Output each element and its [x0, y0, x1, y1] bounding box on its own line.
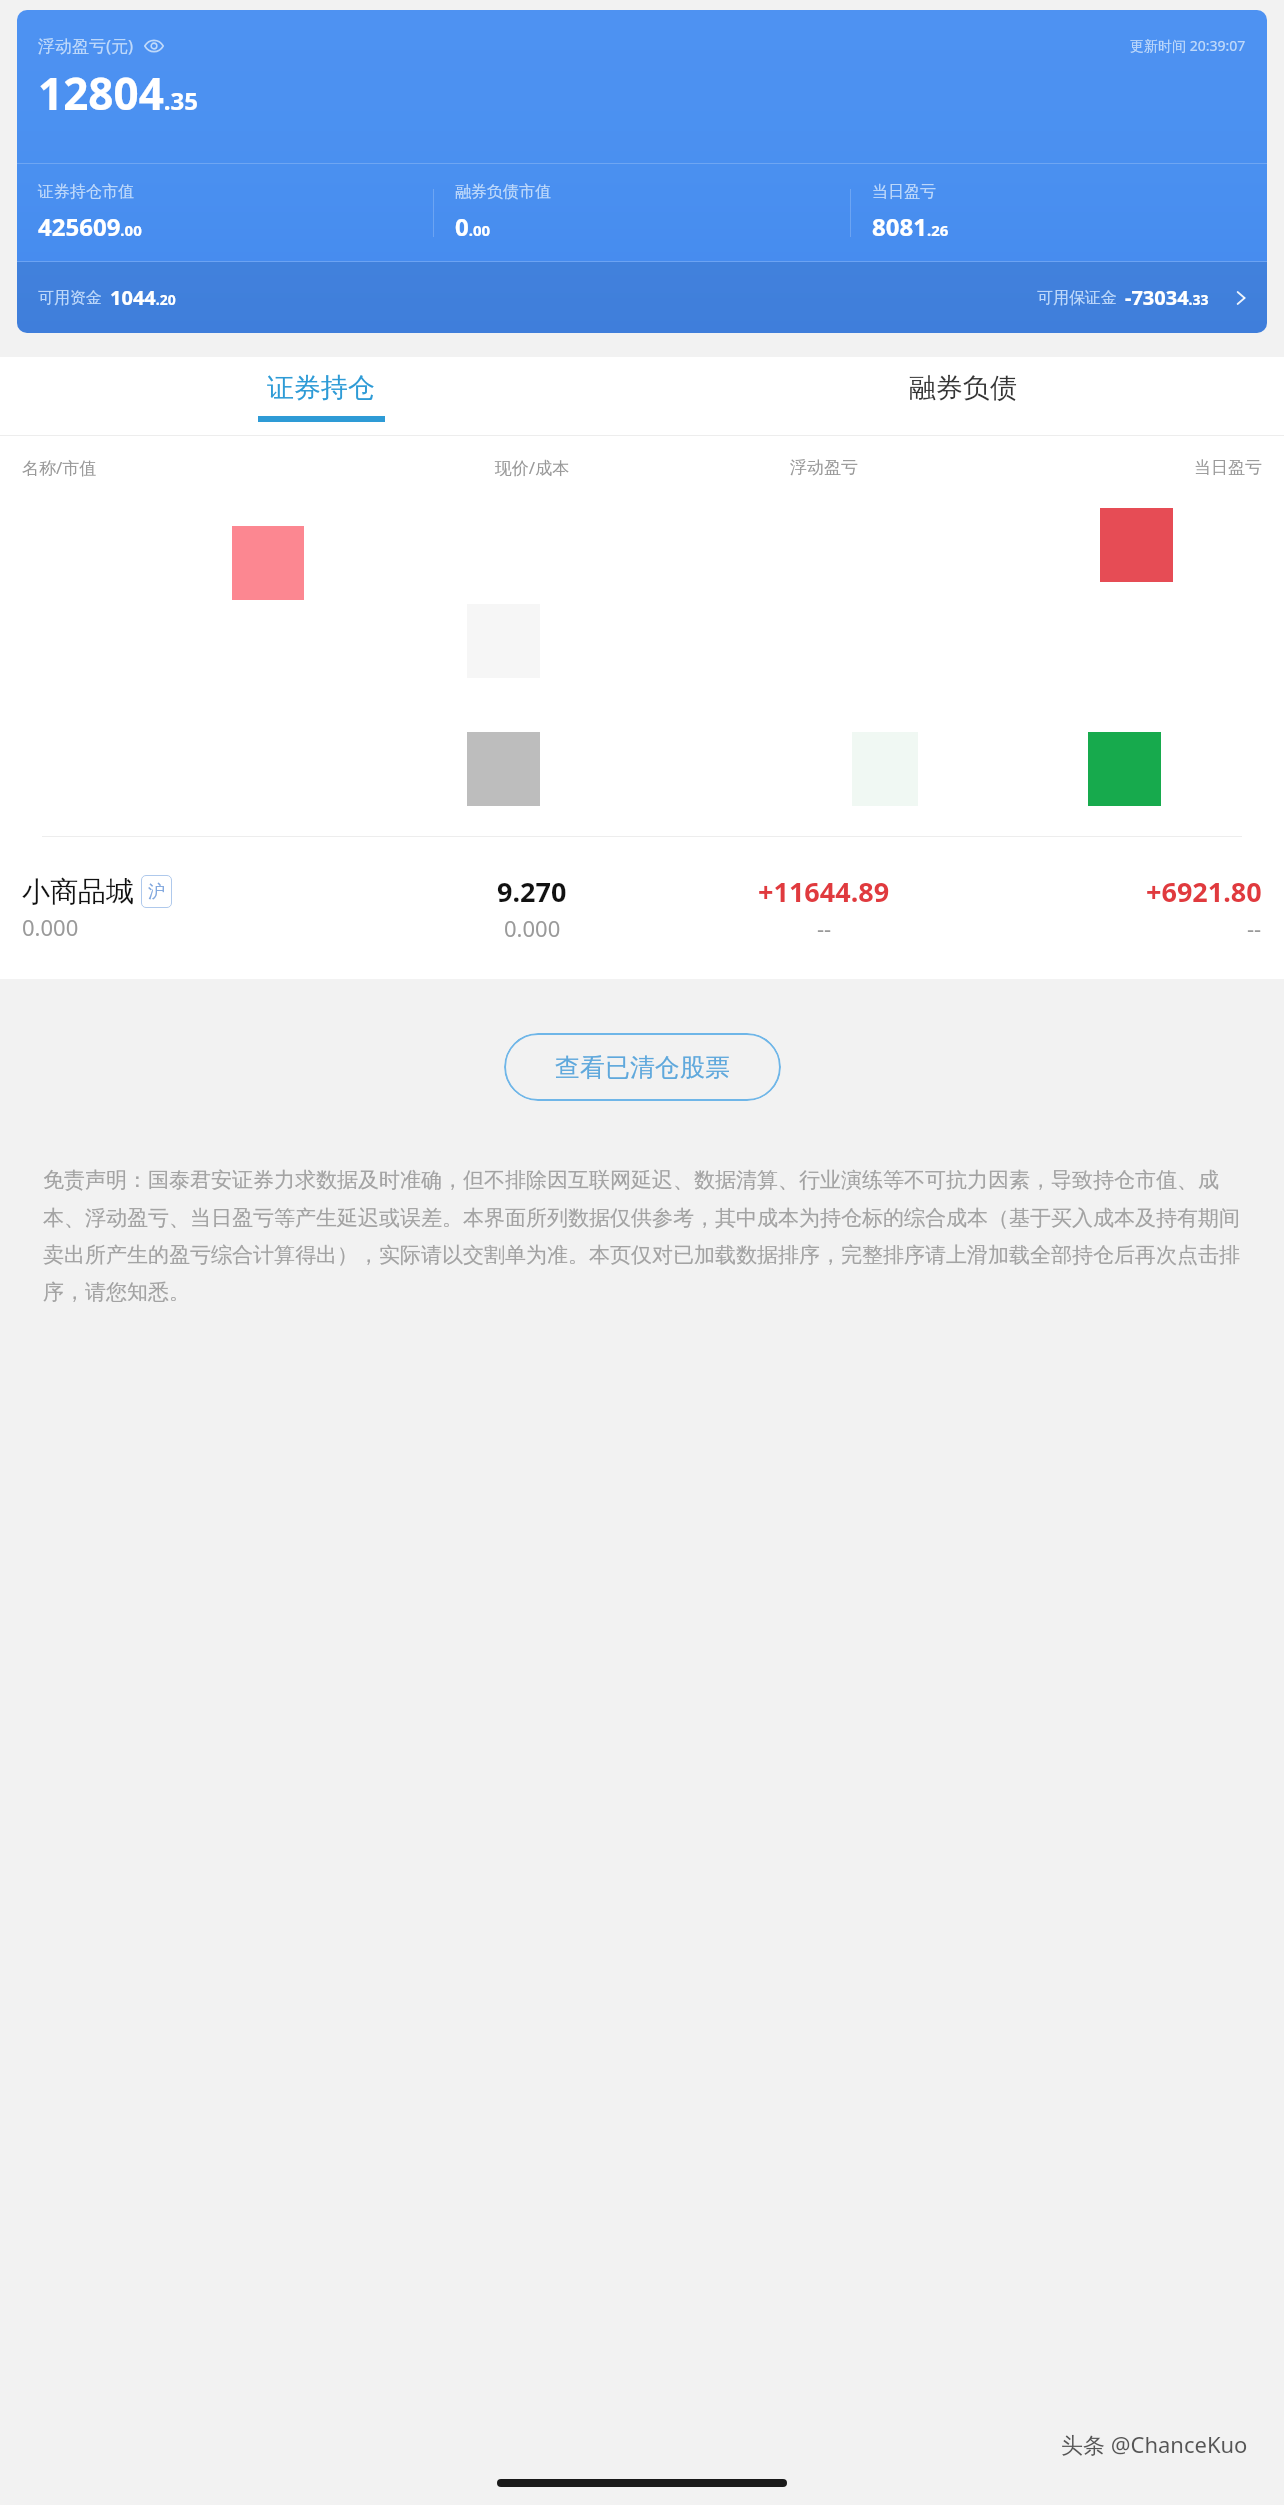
- staticText: 名称/市值: [22, 456, 386, 479]
- staticText: 1044.20: [110, 284, 176, 311]
- staticText: 证券持仓市值: [38, 182, 134, 202]
- button[interactable]: 查看已清仓股票: [504, 1033, 781, 1101]
- button[interactable]: 小商品城: [0, 837, 1284, 979]
- staticText: 更新时间 20:39:07: [1130, 36, 1246, 55]
- button[interactable]: Toggle visibility: [143, 35, 165, 57]
- button[interactable]: 可用资金: [17, 262, 1267, 333]
- staticText: 免责声明：国泰君安证券力求数据及时准确，但不排除因互联网延迟、数据清算、行业演练…: [43, 1167, 1241, 1305]
- staticText: 浮动盈亏(元): [38, 34, 134, 57]
- staticText: 12804.35: [38, 63, 199, 123]
- button[interactable]: 浮动盈亏(元): [17, 10, 1267, 333]
- staticText: 可用保证金: [1037, 288, 1117, 308]
- staticText: --: [1247, 913, 1262, 943]
- staticText: 当日盈亏: [970, 457, 1262, 478]
- staticText: -73034.33: [1125, 284, 1209, 311]
- staticText: 浮动盈亏: [678, 457, 970, 478]
- staticText: 0.000: [504, 913, 561, 943]
- staticText: 小商品城: [22, 874, 134, 909]
- staticText: 425609.00: [38, 210, 142, 243]
- button[interactable]: 融券负债: [642, 357, 1284, 435]
- staticText: --: [817, 913, 832, 943]
- staticText: 现价/成本: [386, 456, 678, 479]
- staticText: 0.000: [22, 912, 79, 942]
- staticText: 融券负债: [909, 371, 1017, 405]
- staticText: 当日盈亏: [872, 182, 936, 202]
- staticText: 查看已清仓股票: [555, 1052, 730, 1083]
- staticText: 沪: [148, 881, 165, 902]
- button[interactable]: 证券持仓: [0, 357, 642, 435]
- staticText: 头条 @ChanceKuo: [1061, 2429, 1248, 2459]
- staticText: 0.00: [455, 210, 491, 243]
- staticText: 8081.26: [872, 210, 949, 243]
- staticText: +11644.89: [758, 873, 890, 910]
- staticText: +6921.80: [1146, 873, 1262, 910]
- staticText: 9.270: [497, 873, 567, 910]
- staticText: 融券负债市值: [455, 182, 551, 202]
- staticText: 可用资金: [38, 288, 102, 308]
- other: More: [1231, 288, 1251, 308]
- staticText: 证券持仓: [267, 371, 375, 405]
